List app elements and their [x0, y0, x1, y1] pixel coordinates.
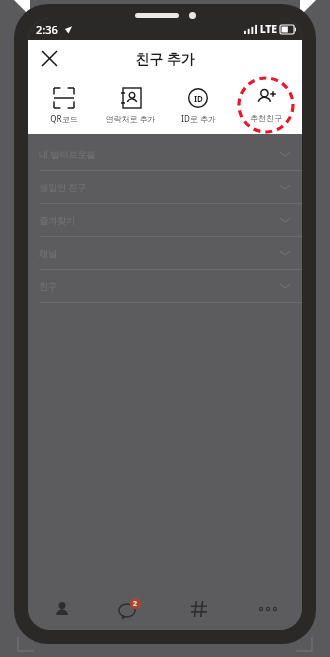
staticText: 2: [133, 599, 138, 609]
staticText: 내 멀티프로필: [39, 148, 96, 160]
staticText: 채널: [39, 248, 57, 259]
button[interactable]: Open Chat: [164, 588, 233, 630]
staticText: 2:36: [36, 22, 58, 37]
staticText: 생일인 친구: [39, 181, 87, 193]
button[interactable]: Close: [32, 41, 66, 75]
button[interactable]: 연락처로 추가: [97, 85, 164, 126]
button[interactable]: More: [233, 588, 302, 630]
staticText: ID로 추가: [181, 113, 216, 124]
staticText: 친구 추가: [135, 49, 195, 68]
button[interactable]: QR코드: [30, 85, 97, 126]
staticText: 즐겨찾기: [39, 215, 75, 226]
button[interactable]: Chats: [96, 588, 164, 630]
button[interactable]: ID: [164, 85, 232, 126]
staticText: 추천친구: [250, 113, 282, 123]
staticText: 연락처로 추가: [105, 113, 156, 124]
button[interactable]: 내 멀티프로필: [28, 138, 302, 171]
staticText: QR코드: [50, 113, 78, 124]
staticText: ID: [194, 93, 203, 104]
staticText: 친구: [39, 281, 57, 292]
staticText: LTE: [260, 22, 277, 36]
button[interactable]: 추천친구: [250, 85, 282, 125]
button[interactable]: Friends: [28, 588, 96, 630]
